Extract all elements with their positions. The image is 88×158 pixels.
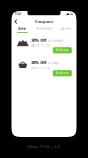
staticText: Redeem <box>56 49 69 52</box>
staticText: Coupons <box>35 19 53 24</box>
staticText: Expired <box>61 27 71 30</box>
staticText: 9:41 <box>15 12 22 16</box>
button[interactable]: Active <box>11 25 33 33</box>
button[interactable]: Expired <box>55 25 76 33</box>
staticText: 30% Off <box>31 38 46 43</box>
staticText: Redeemed <box>36 27 52 30</box>
staticText: on bags <box>48 61 59 65</box>
staticText: iPhone 11 Pro — 5.8” <box>27 145 60 149</box>
staticText: Active <box>18 27 26 30</box>
button[interactable]: 30% Off <box>14 35 74 55</box>
staticText: Redeem <box>56 71 69 75</box>
button[interactable]: Redeemed <box>33 25 55 33</box>
staticText: Expires 18 Oct <box>31 66 50 69</box>
staticText: Expires 12 Oct <box>31 44 50 47</box>
button[interactable]: 20% Off <box>14 57 74 78</box>
staticText: 20% Off <box>31 60 46 65</box>
staticText: on sneakers <box>48 39 64 42</box>
button[interactable]: Back <box>13 18 18 25</box>
